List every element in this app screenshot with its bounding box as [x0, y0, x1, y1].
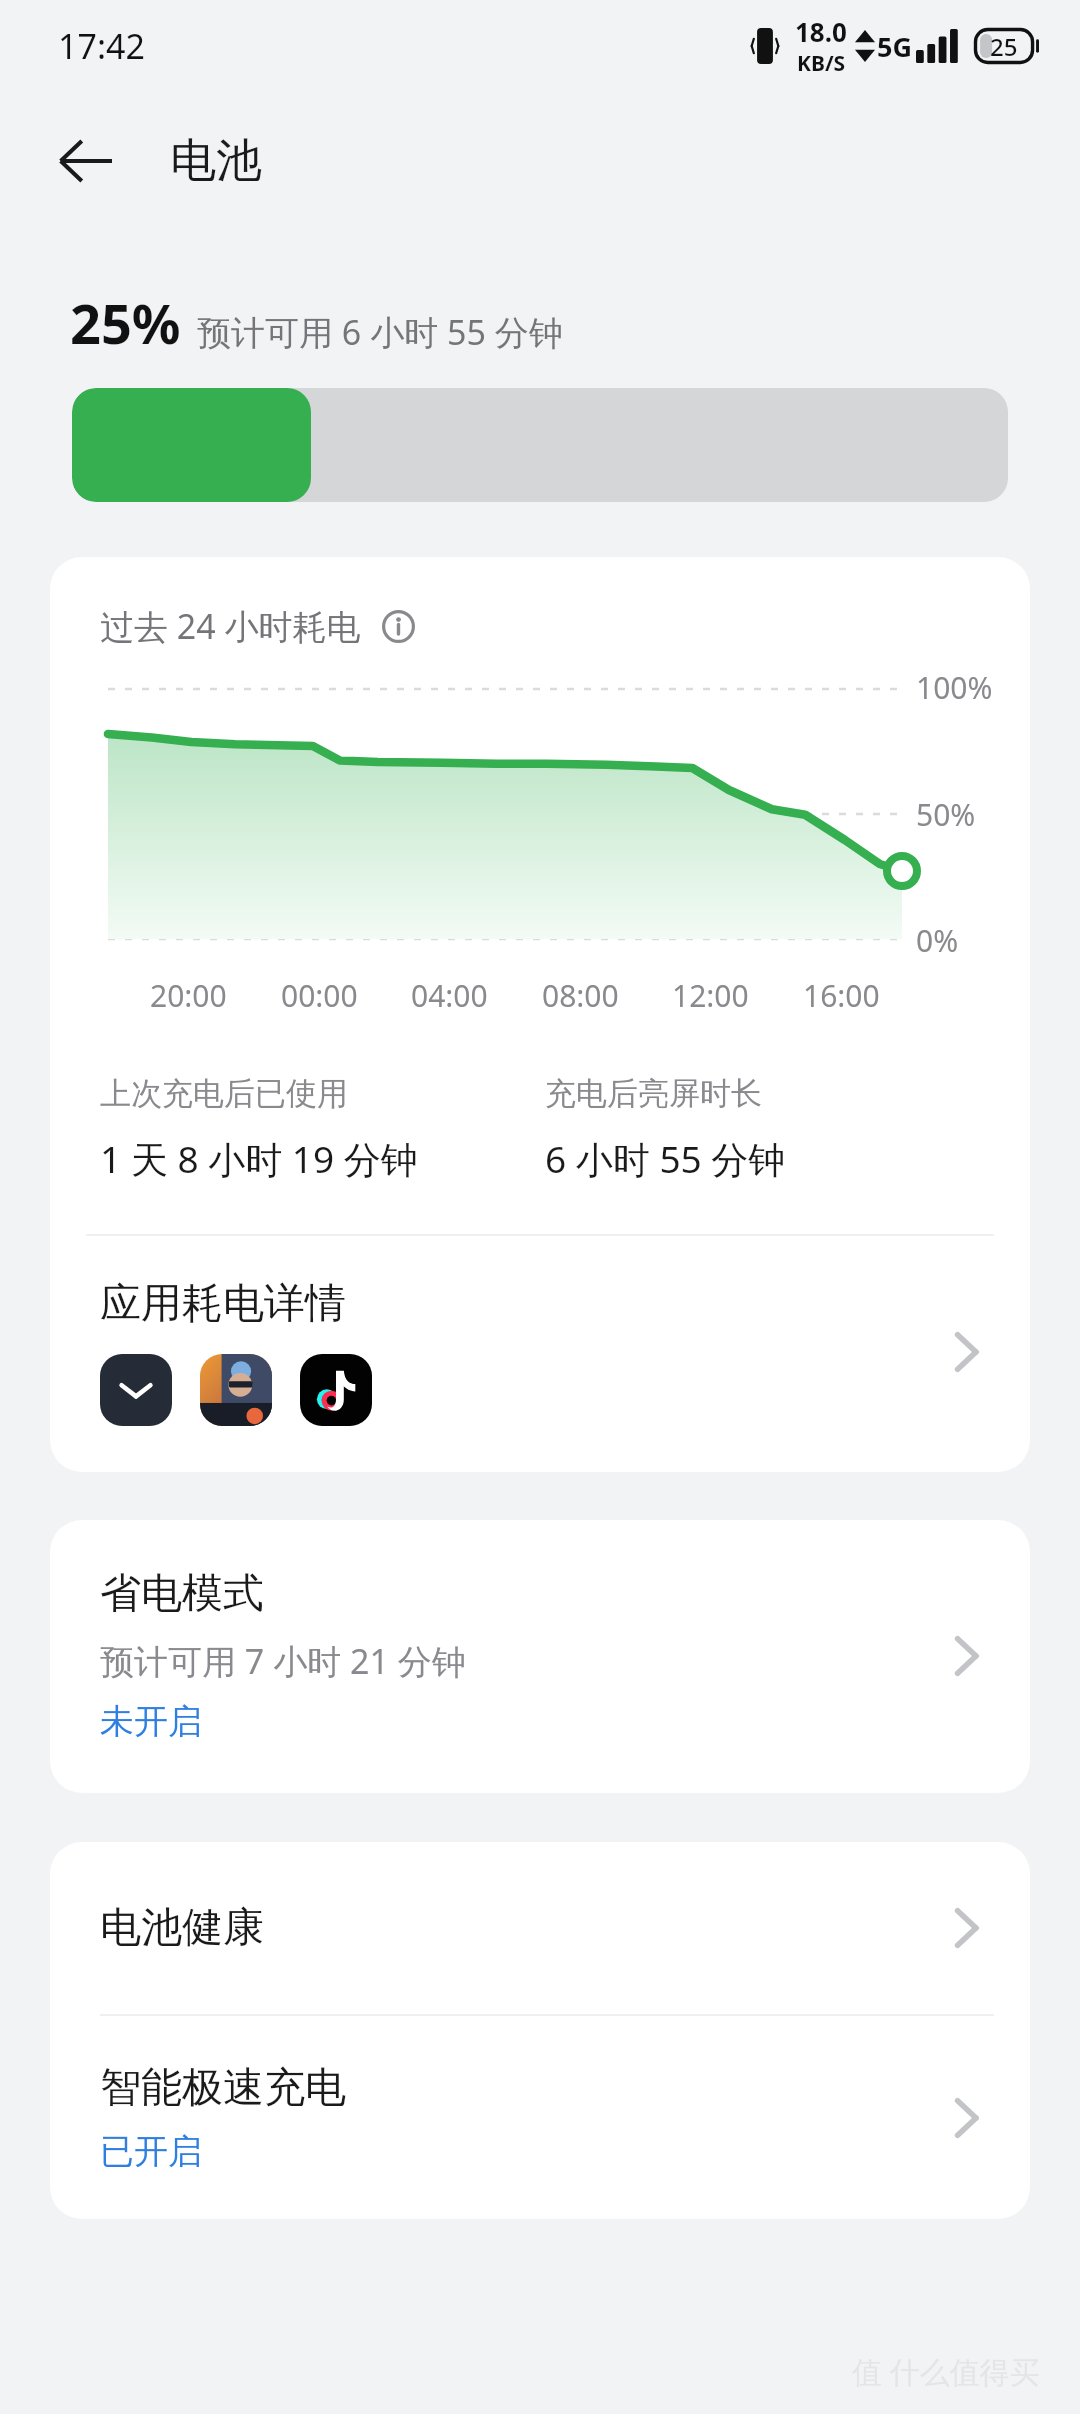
staticText: 智能极速充电 — [100, 2062, 346, 2114]
staticText: 16:00 — [803, 975, 880, 1016]
staticText: 电池健康 — [100, 1902, 948, 1954]
staticText: 12:00 — [672, 975, 749, 1016]
staticText: 1 天 8 小时 19 分钟 — [100, 1133, 418, 1184]
staticText: 6 小时 55 分钟 — [545, 1133, 786, 1184]
staticText: 5G — [877, 28, 912, 65]
staticText: 省电模式 — [100, 1568, 264, 1620]
staticText: 未开启 — [100, 1700, 202, 1743]
staticText: KB/S — [797, 49, 846, 78]
staticText: 应用耗电详情 — [100, 1278, 346, 1330]
staticText: 值 什么值得买 — [852, 2351, 1040, 2392]
staticText: 17:42 — [58, 23, 145, 69]
staticText: 预计可用 6 小时 55 分钟 — [197, 309, 563, 355]
staticText: 预计可用 7 小时 21 分钟 — [100, 1638, 466, 1684]
staticText: 04:00 — [411, 975, 488, 1016]
staticText: 上次充电后已使用 — [100, 1074, 348, 1113]
button[interactable]: Info — [375, 603, 421, 649]
staticText: 0% — [916, 920, 959, 961]
staticText: 08:00 — [542, 975, 619, 1016]
staticText: 25% — [70, 286, 181, 360]
button[interactable]: 电池健康 — [50, 1842, 1030, 2014]
staticText: 20:00 — [150, 975, 227, 1016]
staticText: 充电后亮屏时长 — [545, 1074, 762, 1113]
staticText: 18.0 — [795, 14, 847, 49]
staticText: 50% — [916, 794, 976, 835]
staticText: 电池 — [170, 132, 262, 190]
button[interactable]: 应用耗电详情 — [50, 1236, 1030, 1472]
staticText: 100% — [916, 667, 993, 708]
staticText: 已开启 — [100, 2130, 202, 2173]
button[interactable]: 智能极速充电 — [50, 2016, 1030, 2219]
staticText: 过去 24 小时耗电 — [100, 603, 361, 649]
staticText: 25 — [990, 30, 1018, 63]
button[interactable]: 省电模式 — [50, 1520, 1030, 1793]
staticText: 00:00 — [281, 975, 358, 1016]
button[interactable]: Back — [28, 104, 142, 218]
